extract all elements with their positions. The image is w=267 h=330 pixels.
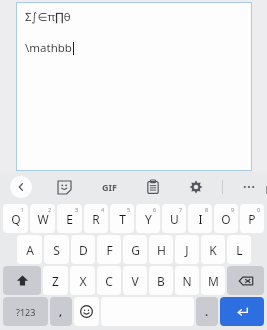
- button[interactable]: GIF: [96, 174, 122, 200]
- button[interactable]: Emoji: [74, 297, 99, 326]
- button[interactable]: K: [201, 235, 225, 264]
- button[interactable]: Comma: [50, 297, 72, 326]
- button[interactable]: R: [84, 204, 108, 233]
- button[interactable]: W: [30, 204, 55, 233]
- button[interactable]: G: [123, 235, 147, 264]
- button[interactable]: V: [123, 266, 147, 295]
- staticText: Σ∫∈π∏θ: [25, 9, 71, 25]
- button[interactable]: Backspace: [227, 266, 264, 295]
- button[interactable]: P: [240, 204, 264, 233]
- staticText: Y: [145, 211, 152, 227]
- button[interactable]: U: [162, 204, 186, 233]
- staticText: A: [26, 242, 34, 258]
- staticText: ,: [59, 304, 63, 319]
- staticText: D: [79, 242, 88, 258]
- button[interactable]: Enter: [220, 297, 264, 326]
- button[interactable]: Q: [3, 204, 28, 233]
- button[interactable]: D: [71, 235, 95, 264]
- staticText: 9: [231, 206, 235, 213]
- button[interactable]: B: [149, 266, 173, 295]
- staticText: X: [79, 273, 87, 289]
- staticText: V: [131, 273, 139, 289]
- button[interactable]: A: [17, 235, 42, 264]
- button[interactable]: F: [97, 235, 121, 264]
- button[interactable]: Period: [196, 297, 218, 326]
- staticText: I: [198, 211, 203, 227]
- staticText: 3: [75, 206, 79, 213]
- button[interactable]: Σ∫∈π∏θ: [16, 2, 252, 171]
- staticText: ?123: [16, 306, 36, 318]
- button[interactable]: E: [57, 204, 82, 233]
- staticText: 6: [153, 206, 157, 213]
- staticText: M: [208, 273, 219, 289]
- staticText: C: [105, 273, 113, 289]
- staticText: GIF: [102, 181, 117, 193]
- button[interactable]: H: [149, 235, 173, 264]
- staticText: N: [182, 273, 192, 289]
- staticText: T: [119, 211, 126, 227]
- button[interactable]: Clipboard: [141, 175, 165, 199]
- staticText: O: [221, 211, 231, 227]
- staticText: H: [157, 242, 166, 258]
- button[interactable]: T: [110, 204, 134, 233]
- button[interactable]: L: [227, 235, 251, 264]
- button[interactable]: N: [175, 266, 199, 295]
- button[interactable]: Settings: [184, 175, 208, 199]
- staticText: 5: [127, 206, 131, 213]
- button[interactable]: ?123: [3, 297, 48, 326]
- button[interactable]: Y: [136, 204, 160, 233]
- button[interactable]: S: [44, 235, 69, 264]
- button[interactable]: J: [175, 235, 199, 264]
- staticText: E: [66, 211, 73, 227]
- staticText: 7: [179, 206, 183, 213]
- button[interactable]: I: [188, 204, 212, 233]
- staticText: Q: [11, 211, 21, 227]
- staticText: W: [37, 211, 49, 227]
- button[interactable]: O: [214, 204, 238, 233]
- button[interactable]: More options: [237, 175, 261, 199]
- staticText: L: [236, 242, 243, 258]
- button[interactable]: Stickers: [52, 175, 76, 199]
- staticText: B: [157, 273, 165, 289]
- staticText: 1: [21, 206, 25, 213]
- staticText: 0: [257, 206, 261, 213]
- staticText: P: [248, 211, 256, 227]
- button[interactable]: Shift: [3, 266, 41, 295]
- button[interactable]: Z: [43, 266, 68, 295]
- staticText: S: [53, 242, 60, 258]
- button[interactable]: X: [70, 266, 95, 295]
- staticText: G: [131, 242, 140, 258]
- button[interactable]: M: [201, 266, 225, 295]
- staticText: .: [205, 304, 209, 319]
- staticText: K: [209, 242, 217, 258]
- staticText: U: [170, 211, 179, 227]
- staticText: 8: [205, 206, 209, 213]
- staticText: 4: [101, 206, 105, 213]
- staticText: J: [185, 242, 189, 258]
- button[interactable]: C: [97, 266, 121, 295]
- button[interactable]: Back: [10, 176, 32, 198]
- staticText: \mathbb: [25, 40, 72, 56]
- staticText: 2: [48, 206, 52, 213]
- staticText: R: [92, 211, 100, 227]
- staticText: F: [106, 242, 113, 258]
- staticText: Z: [52, 273, 59, 289]
